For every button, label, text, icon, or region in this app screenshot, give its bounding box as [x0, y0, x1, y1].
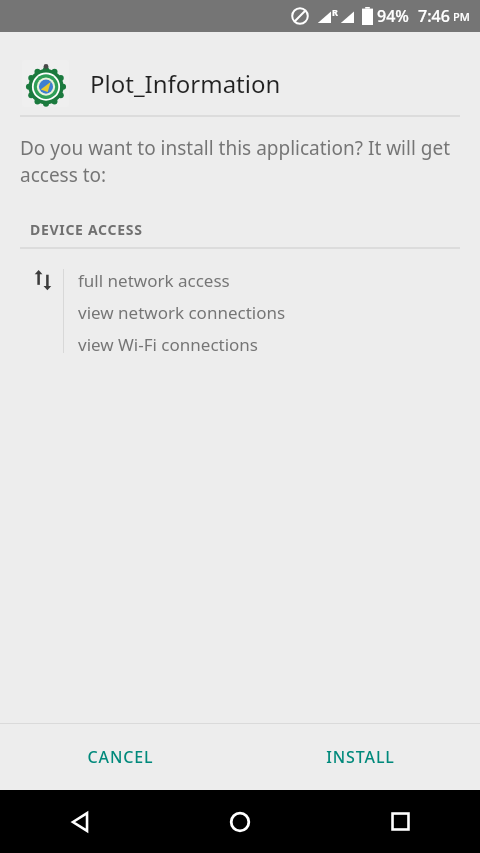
button[interactable]: INSTALL — [240, 724, 480, 790]
staticText: 94% — [377, 5, 409, 27]
button[interactable]: CANCEL — [0, 724, 240, 790]
staticText: 7:46 — [418, 5, 450, 27]
staticText: DEVICE ACCESS — [30, 220, 143, 239]
button[interactable]: Home — [160, 790, 320, 853]
staticText: Do you want to install this application?… — [20, 135, 460, 188]
button[interactable]: Recent apps — [320, 790, 480, 853]
staticText: full network access — [78, 269, 230, 292]
staticText: view network connections — [78, 301, 286, 324]
staticText: PM — [453, 9, 470, 24]
staticText: Plot_Information — [90, 67, 281, 100]
button[interactable]: Back — [0, 790, 160, 853]
staticText: R — [332, 6, 338, 18]
staticText: INSTALL — [326, 746, 395, 768]
staticText: view Wi-Fi connections — [78, 333, 259, 356]
staticText: CANCEL — [87, 746, 154, 768]
